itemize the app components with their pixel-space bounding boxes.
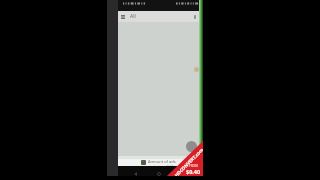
staticText: statistics: 947 xyxy=(148,164,174,166)
button[interactable]: Open navigation menu xyxy=(118,12,128,22)
staticText: FROM xyxy=(189,164,198,168)
button[interactable]: More options xyxy=(190,12,199,21)
staticText: $0.40 xyxy=(186,168,201,175)
button[interactable]: Home xyxy=(152,166,166,176)
button[interactable]: Add xyxy=(186,141,197,152)
staticText: Amount of ads xyxy=(148,159,176,164)
button[interactable]: Back xyxy=(128,166,142,176)
button[interactable]: Recent apps xyxy=(175,166,189,176)
staticText: All xyxy=(130,13,136,20)
button[interactable]: Amount of ads xyxy=(118,159,199,166)
